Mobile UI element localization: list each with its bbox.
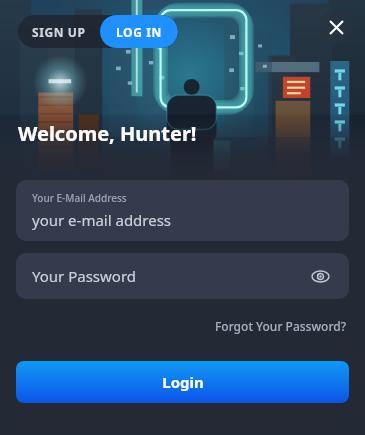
staticText: Forgot Your Password? <box>215 318 347 334</box>
staticText: your e-mail address <box>32 210 172 230</box>
button[interactable]: Your E-Mail Address <box>16 180 349 241</box>
staticText: Your E-Mail Address <box>32 191 127 205</box>
button[interactable]: SIGN UP <box>18 15 100 48</box>
button[interactable]: Close <box>319 10 353 44</box>
button[interactable]: Forgot Your Password? <box>213 315 349 337</box>
button[interactable]: LOG IN <box>100 15 178 48</box>
staticText: LOG IN <box>116 24 162 40</box>
staticText: Welcome, Hunter! <box>18 120 197 147</box>
staticText: Your Password <box>32 266 307 286</box>
button[interactable]: Show password <box>307 263 333 289</box>
button[interactable]: Login <box>16 361 349 403</box>
button[interactable]: Your Password <box>16 253 349 299</box>
staticText: SIGN UP <box>32 24 86 40</box>
staticText: Login <box>162 372 204 392</box>
